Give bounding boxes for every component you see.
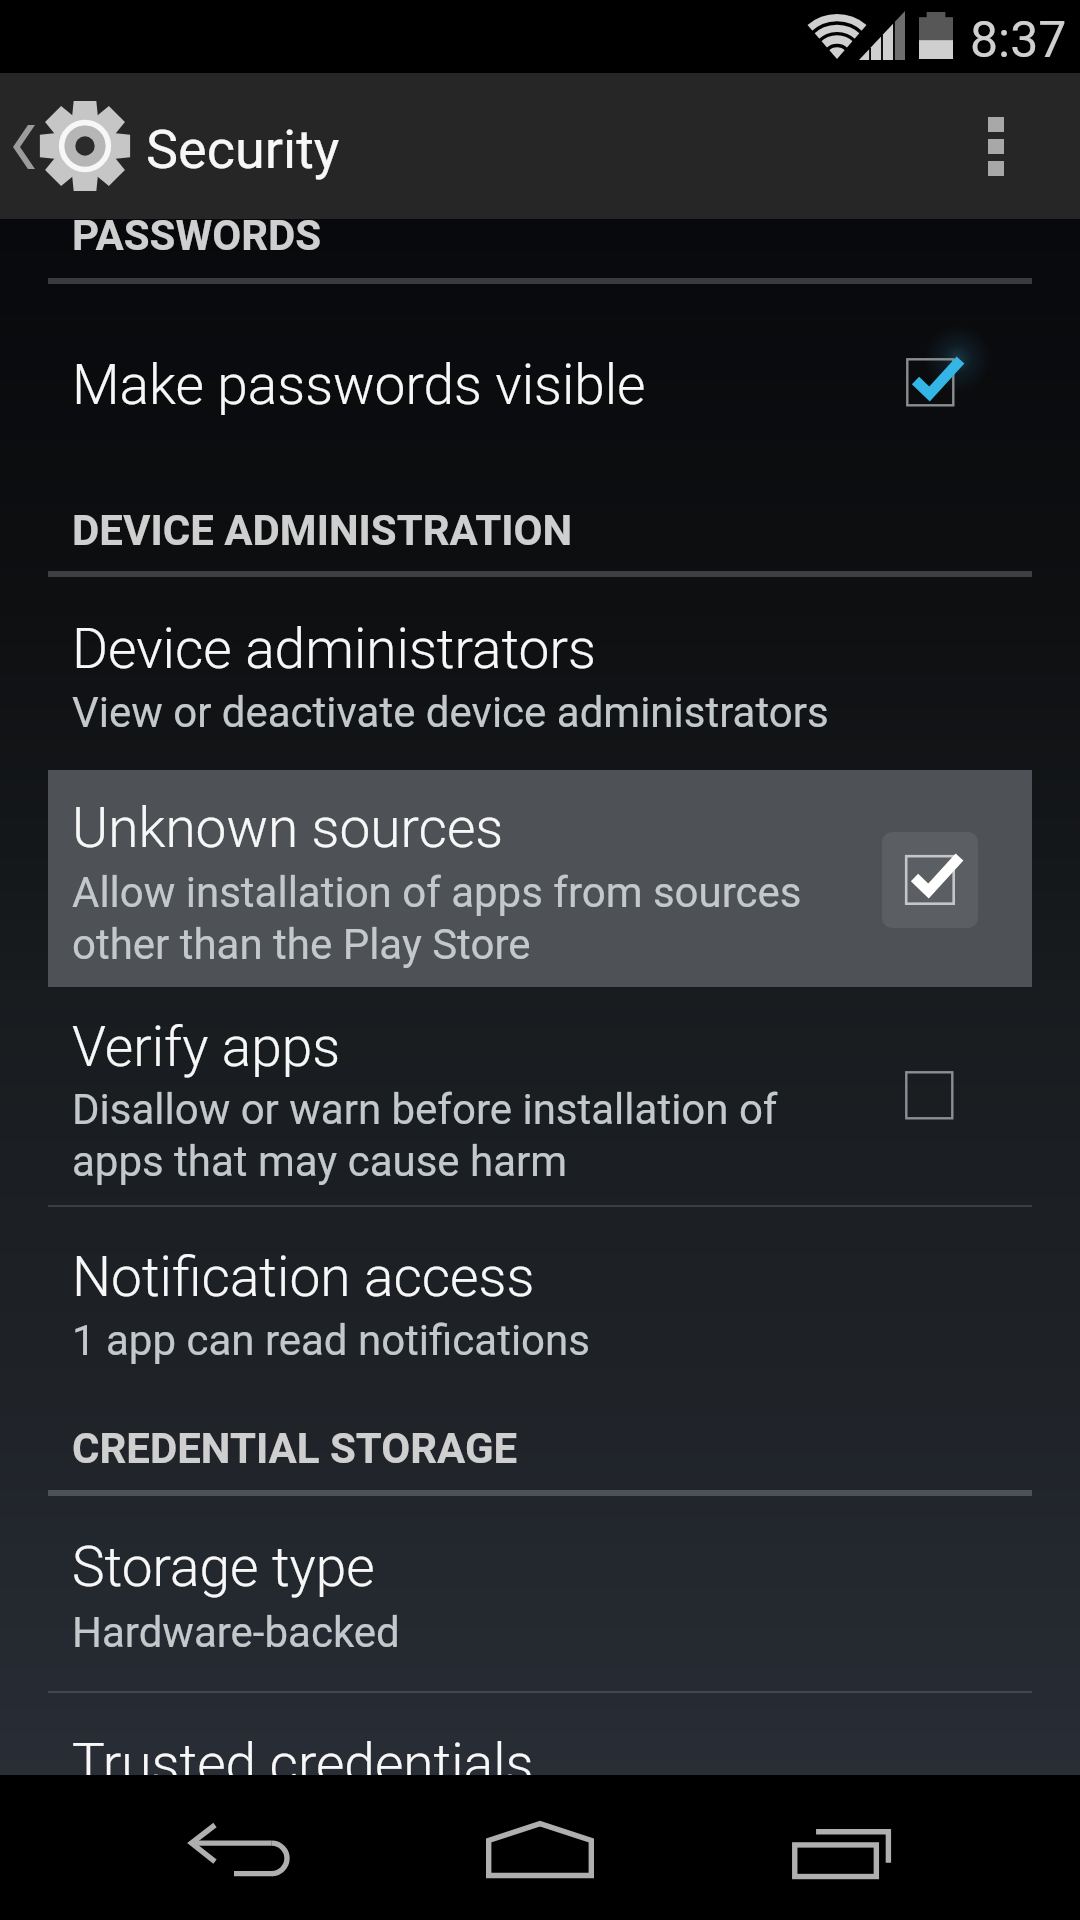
staticText: Allow installation of apps from sources … bbox=[72, 868, 802, 969]
button[interactable]: Storage type bbox=[0, 1515, 1080, 1687]
staticText: View or deactivate device administrators bbox=[72, 688, 829, 737]
button[interactable]: Make passwords visible bbox=[0, 290, 1080, 475]
staticText: Security bbox=[146, 118, 340, 181]
staticText: PASSWORDS bbox=[72, 211, 322, 260]
staticText: CREDENTIAL STORAGE bbox=[72, 1424, 518, 1473]
staticText: 1 app can read notifications bbox=[72, 1316, 590, 1365]
button[interactable]: Verify apps bbox=[0, 990, 1080, 1202]
button[interactable]: Home bbox=[420, 1775, 660, 1920]
button[interactable]: More options bbox=[912, 73, 1080, 219]
staticText: Verify apps bbox=[72, 1015, 341, 1079]
button[interactable]: Notification access bbox=[0, 1215, 1080, 1385]
staticText: DEVICE ADMINISTRATION bbox=[72, 506, 573, 555]
staticText: Make passwords visible bbox=[72, 353, 646, 417]
button[interactable]: Unknown sources bbox=[48, 770, 1032, 987]
button[interactable]: Back bbox=[120, 1775, 360, 1920]
button[interactable]: Recent apps bbox=[720, 1775, 960, 1920]
staticText: Unknown sources bbox=[72, 796, 504, 860]
button[interactable]: Trusted credentials bbox=[0, 1700, 1080, 1775]
staticText: Trusted credentials bbox=[72, 1732, 534, 1796]
staticText: Device administrators bbox=[72, 617, 596, 681]
button[interactable]: Device administrators bbox=[0, 598, 1080, 768]
staticText: Notification access bbox=[72, 1245, 535, 1309]
staticText: Hardware-backed bbox=[72, 1608, 400, 1657]
staticText: 8:37 bbox=[970, 11, 1067, 70]
staticText: Storage type bbox=[72, 1535, 375, 1599]
button[interactable]: Navigate up bbox=[0, 73, 142, 219]
staticText: Disallow or warn before installation of … bbox=[72, 1085, 778, 1186]
